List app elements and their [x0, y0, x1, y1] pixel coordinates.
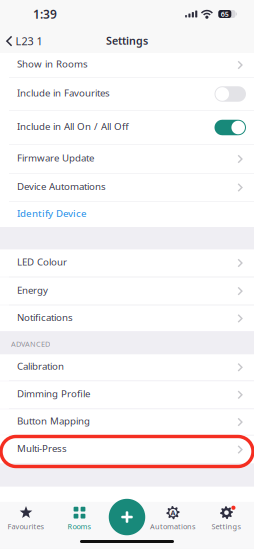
- button[interactable]: LED Colour: [0, 249, 254, 277]
- button[interactable]: Dimming Profile: [0, 381, 254, 408]
- button[interactable]: Multi-Press: [0, 436, 254, 463]
- staticText: Notifications: [17, 311, 73, 324]
- staticText: Include in Favourites: [17, 86, 110, 99]
- staticText: Include in All On / All Off: [17, 120, 129, 133]
- staticText: Multi-Press: [17, 442, 67, 455]
- button[interactable]: Include in All On / All Off: [0, 111, 254, 144]
- button[interactable]: Add: [109, 499, 145, 535]
- staticText: LED Colour: [17, 255, 67, 268]
- staticText: Energy: [17, 283, 48, 296]
- button[interactable]: Button Mapping: [0, 409, 254, 435]
- staticText: 1:39: [33, 6, 57, 22]
- button[interactable]: Notifications: [0, 306, 254, 331]
- button[interactable]: Favourites: [0, 502, 52, 549]
- staticText: L23 1: [15, 34, 42, 48]
- button[interactable]: Identify Device: [0, 202, 254, 227]
- button[interactable]: Settings: [199, 502, 254, 549]
- staticText: Dimming Profile: [17, 387, 90, 400]
- staticText: Settings: [211, 521, 241, 531]
- staticText: ADVANCED: [11, 339, 50, 349]
- button[interactable]: Show in Rooms: [0, 53, 254, 77]
- button[interactable]: Energy: [0, 278, 254, 305]
- button[interactable]: Rooms: [52, 502, 107, 549]
- staticText: Favourites: [7, 521, 44, 531]
- button[interactable]: Firmware Update: [0, 145, 254, 173]
- button[interactable]: Calibration: [0, 354, 254, 380]
- staticText: Identify Device: [17, 207, 87, 220]
- staticText: Calibration: [17, 359, 64, 373]
- staticText: Automations: [150, 521, 196, 531]
- staticText: Rooms: [67, 521, 91, 531]
- button[interactable]: A: [147, 502, 199, 549]
- staticText: A: [170, 508, 175, 517]
- staticText: Show in Rooms: [17, 57, 88, 70]
- staticText: 65: [221, 9, 229, 19]
- staticText: Button Mapping: [17, 414, 90, 427]
- staticText: Firmware Update: [17, 151, 94, 164]
- button[interactable]: L23 1: [0, 28, 42, 53]
- staticText: Device Automations: [17, 180, 106, 193]
- staticText: Settings: [106, 33, 148, 48]
- button[interactable]: Device Automations: [0, 174, 254, 201]
- button[interactable]: Include in Favourites: [0, 78, 254, 110]
